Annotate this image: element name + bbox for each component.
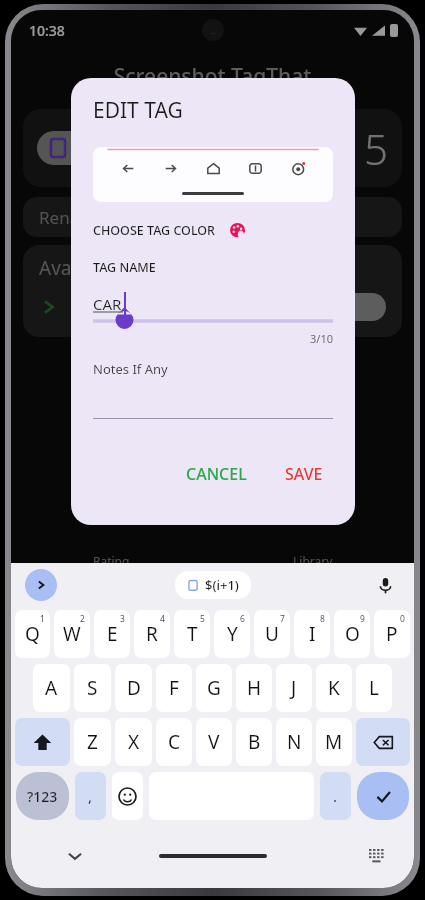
button[interactable]: , <box>75 772 106 820</box>
staticText: P <box>386 621 398 647</box>
button[interactable]: Backspace <box>356 718 410 766</box>
staticText: H <box>247 675 262 701</box>
staticText: Rename <box>39 206 105 229</box>
staticText: 1 <box>40 613 45 625</box>
button[interactable]: Rating <box>11 544 212 578</box>
staticText: 9 <box>360 613 365 625</box>
staticText: G <box>207 675 221 701</box>
button[interactable]: Rename <box>23 197 402 237</box>
button[interactable]: CHOOSE TAG COLOR <box>93 222 245 239</box>
button[interactable]: H <box>236 664 272 712</box>
button[interactable]: M <box>316 718 352 766</box>
button[interactable]: F <box>156 664 192 712</box>
staticText: U <box>265 621 279 647</box>
button[interactable]: Switch keyboard <box>364 844 388 868</box>
button[interactable]: V <box>196 718 232 766</box>
staticText: I <box>309 621 316 647</box>
button[interactable]: C <box>156 718 192 766</box>
button[interactable]: Hide keyboard <box>63 844 87 868</box>
button[interactable]: Shift <box>15 718 70 766</box>
staticText: B <box>248 729 261 755</box>
button[interactable]: Library <box>212 544 414 578</box>
staticText: 3/10 <box>93 331 333 346</box>
staticText: ?123 <box>27 787 58 806</box>
staticText: L <box>369 675 379 701</box>
button[interactable]: Q <box>15 610 50 658</box>
staticText: J <box>291 675 297 701</box>
button[interactable]: E <box>94 610 130 658</box>
staticText: C <box>168 729 181 755</box>
button[interactable]: SAVE <box>275 457 333 491</box>
button[interactable]: K <box>316 664 352 712</box>
staticText: , <box>88 786 93 806</box>
staticText: N <box>287 729 302 755</box>
button[interactable]: W <box>54 610 90 658</box>
staticText: Notes If Any <box>93 360 168 378</box>
staticText: Z <box>87 729 98 755</box>
staticText: 2 <box>80 613 85 625</box>
button[interactable]: S <box>74 664 111 712</box>
staticText: EDIT TAG <box>93 96 183 125</box>
staticText: E <box>107 621 118 647</box>
staticText: R <box>146 621 158 647</box>
button[interactable]: Y <box>214 610 250 658</box>
staticText: CAR <box>93 294 122 314</box>
staticText: . <box>333 786 338 806</box>
button[interactable]: Voice input <box>372 572 398 598</box>
staticText: CANCEL <box>186 463 247 485</box>
button[interactable]: O <box>334 610 370 658</box>
button[interactable]: R <box>134 610 170 658</box>
button[interactable]: CAR <box>93 294 333 328</box>
button[interactable]: I <box>294 610 330 658</box>
button[interactable] <box>93 147 333 202</box>
button[interactable]: $(i+1) <box>175 571 251 599</box>
staticText: Library <box>293 553 333 569</box>
button[interactable]: J <box>276 664 312 712</box>
button[interactable]: Available <box>23 245 402 337</box>
staticText: D <box>127 675 141 701</box>
staticText: Screenshot TagThat <box>11 62 414 91</box>
other: Choose tag color <box>230 223 245 238</box>
staticText: 5 <box>200 613 205 625</box>
staticText: 3 <box>120 613 125 625</box>
staticText: $(i+1) <box>205 576 239 594</box>
staticText: X <box>128 729 140 755</box>
staticText: .. <box>211 25 216 36</box>
staticText: M <box>325 729 343 755</box>
staticText: 10:38 <box>29 21 65 40</box>
button[interactable]: G <box>196 664 232 712</box>
button[interactable]: Enter <box>357 772 409 820</box>
staticText: 7 <box>280 613 285 625</box>
staticText: F <box>169 675 179 701</box>
staticText: W <box>63 621 81 647</box>
staticText: O <box>345 621 360 647</box>
button[interactable]: N <box>276 718 312 766</box>
staticText: 6 <box>240 613 245 625</box>
staticText: 5 <box>364 120 388 177</box>
staticText: S <box>87 675 98 701</box>
staticText: K <box>328 675 340 701</box>
button[interactable]: CANCEL <box>176 457 257 491</box>
staticText: Q <box>25 621 40 647</box>
button[interactable]: A <box>33 664 70 712</box>
staticText: Y <box>227 621 238 647</box>
button[interactable]: Emoji <box>112 772 143 820</box>
staticText: SAVE <box>285 463 323 485</box>
button[interactable]: D <box>115 664 152 712</box>
button[interactable]: More suggestions <box>25 569 57 601</box>
button[interactable]: X <box>115 718 152 766</box>
button[interactable]: T <box>174 610 210 658</box>
button[interactable]: Z <box>74 718 111 766</box>
staticText: 8 <box>320 613 325 625</box>
button[interactable]: L <box>356 664 392 712</box>
staticText: 0 <box>400 613 405 625</box>
staticText: A <box>45 675 58 701</box>
button[interactable]: B <box>236 718 272 766</box>
button[interactable]: P <box>374 610 410 658</box>
button[interactable]: ?123 <box>16 772 69 820</box>
button[interactable]: . <box>320 772 351 820</box>
staticText: 4 <box>160 613 165 625</box>
button[interactable]: U <box>254 610 290 658</box>
button[interactable]: 5 <box>23 109 402 187</box>
